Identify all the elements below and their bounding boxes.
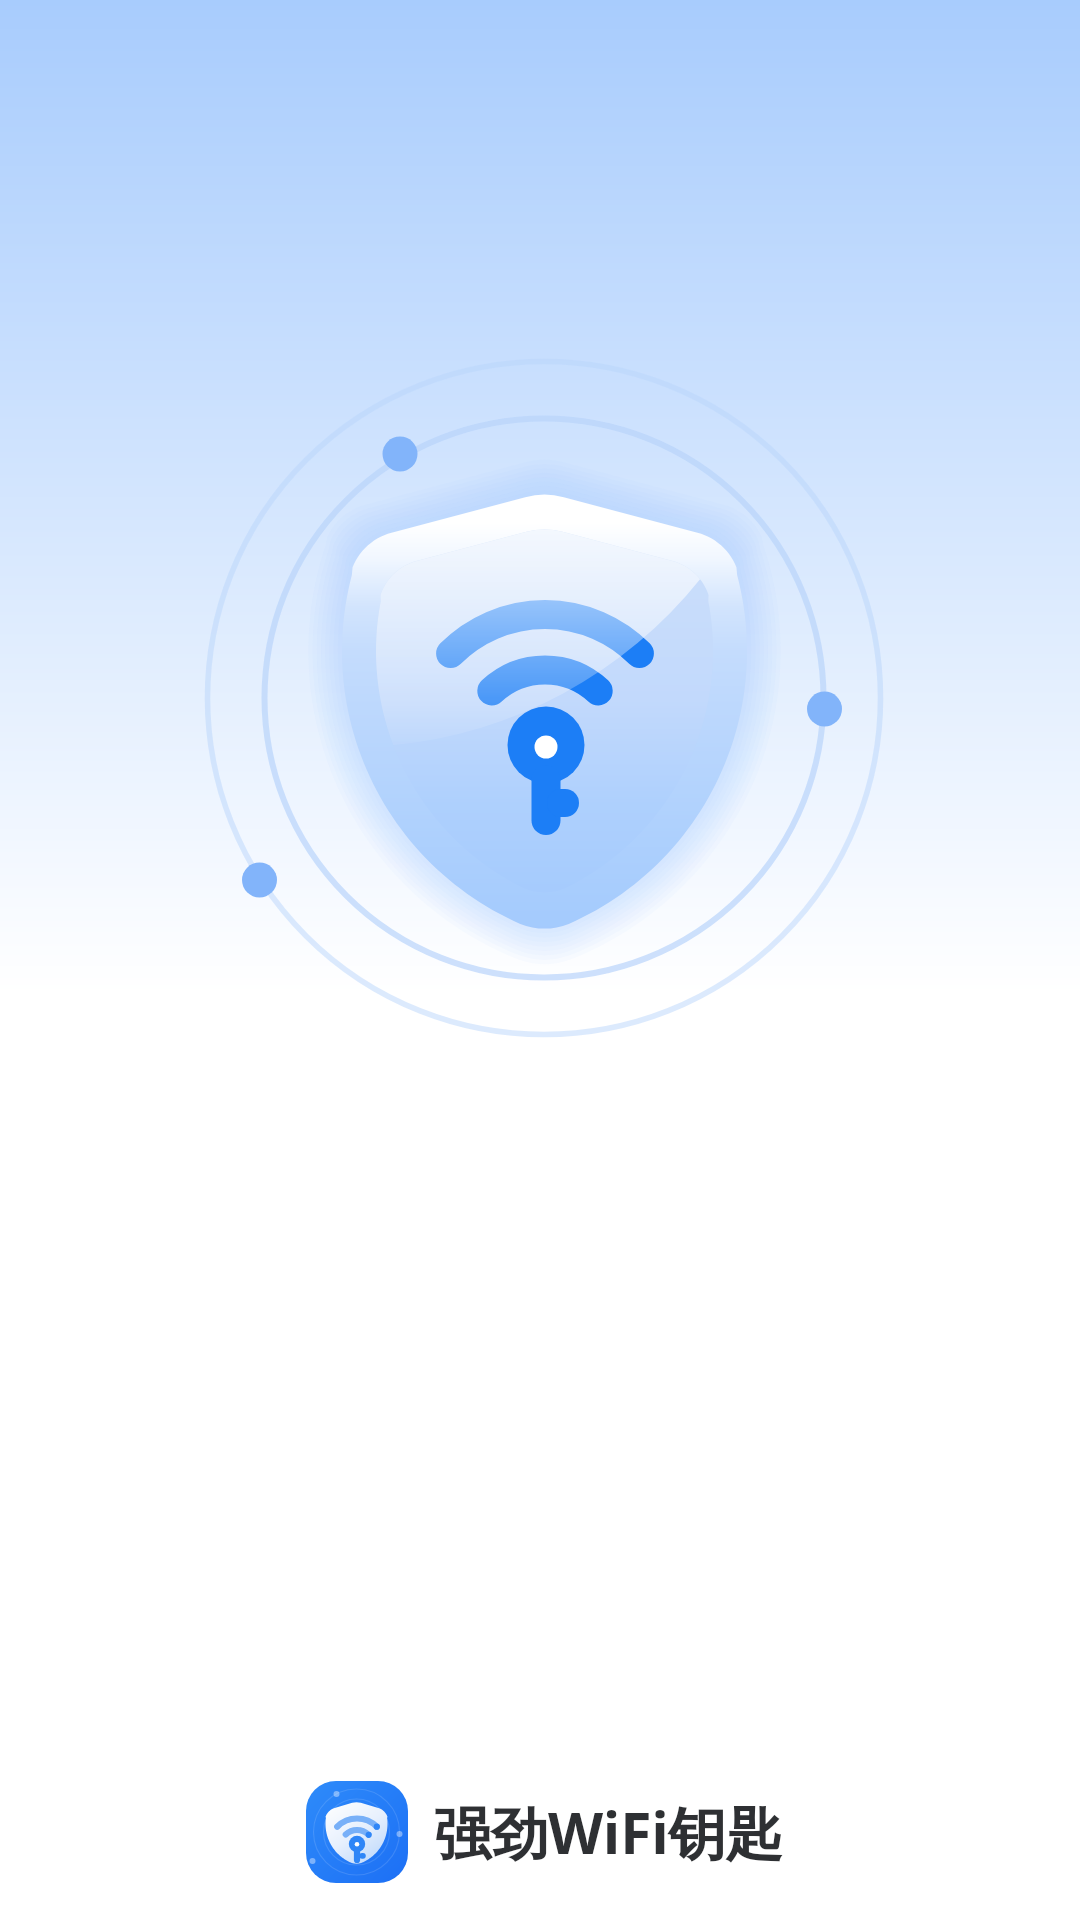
button[interactable]: 强劲WiFi钥匙 <box>306 1781 783 1883</box>
staticText: 强劲WiFi钥匙 <box>434 1793 783 1871</box>
